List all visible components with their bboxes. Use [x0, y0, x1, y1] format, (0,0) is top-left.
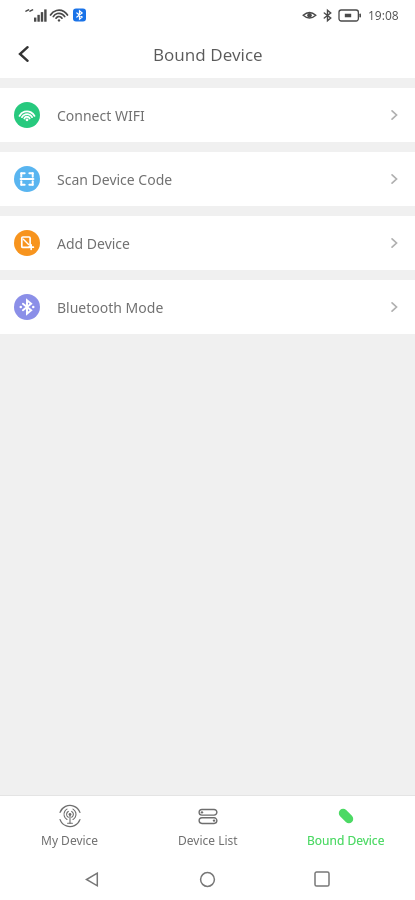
button[interactable]: Device List — [139, 796, 277, 858]
staticText: Scan Device Code — [57, 170, 173, 189]
button[interactable]: Bound Device — [277, 796, 415, 858]
staticText: Bound Device — [307, 832, 385, 848]
staticText: Bound Device — [153, 43, 263, 66]
button[interactable]: Connect WIFI — [0, 88, 415, 142]
staticText: Bluetooth Mode — [57, 298, 164, 317]
button[interactable]: My Device — [0, 796, 139, 858]
button[interactable]: Add Device — [0, 216, 415, 270]
button[interactable]: Back — [70, 858, 114, 900]
button[interactable]: Back — [0, 30, 48, 78]
staticText: Connect WIFI — [57, 106, 145, 125]
button[interactable]: Recents — [300, 858, 344, 900]
button[interactable]: Home — [185, 858, 229, 900]
staticText: Device List — [178, 832, 238, 848]
staticText: 19:08 — [368, 7, 399, 23]
staticText: My Device — [41, 832, 99, 848]
button[interactable]: Scan Device Code — [0, 152, 415, 206]
button[interactable]: Bluetooth Mode — [0, 280, 415, 334]
staticText: Add Device — [57, 234, 130, 253]
